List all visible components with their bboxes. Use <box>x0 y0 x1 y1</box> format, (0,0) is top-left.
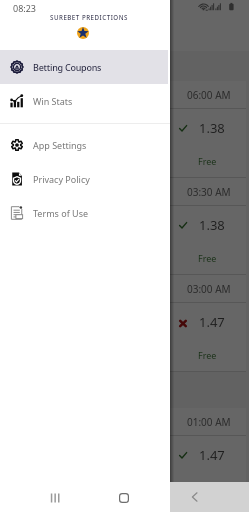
staticText: 1.47 <box>199 446 225 464</box>
staticText: App Settings <box>33 139 87 151</box>
staticText: Free <box>198 155 217 167</box>
staticText: 01:00 AM <box>187 415 231 429</box>
button[interactable]: 03:00 AM <box>3 275 246 372</box>
staticText: Betting Coupons <box>33 61 102 73</box>
button[interactable]: Betting Coupons <box>0 50 168 84</box>
staticText: 03:30 AM <box>187 185 231 199</box>
button[interactable]: App Settings <box>0 128 168 162</box>
button[interactable]: Back <box>183 482 207 512</box>
staticText: 1.38 <box>199 216 225 234</box>
button[interactable]: 06:00 AM <box>3 81 246 178</box>
staticText: Free <box>198 349 217 361</box>
button[interactable]: 01:00 AM <box>3 408 246 505</box>
button[interactable]: Win Stats <box>0 84 168 118</box>
staticText: 06:00 AM <box>187 88 231 102</box>
staticText: Terms of Use <box>33 207 89 219</box>
staticText: Win Stats <box>33 95 73 107</box>
staticText: 08:23 <box>13 2 37 14</box>
staticText: 03:00 AM <box>187 282 231 296</box>
button[interactable]: Privacy Policy <box>0 162 168 196</box>
staticText: 1.47 <box>199 313 225 331</box>
staticText: SUREBET PREDICTIONS <box>50 13 128 21</box>
button[interactable]: 03:30 AM <box>3 178 246 275</box>
button[interactable]: Home <box>112 483 136 512</box>
staticText: Free <box>198 252 217 264</box>
button[interactable]: Terms of Use <box>0 196 168 230</box>
staticText: 1.38 <box>199 119 225 137</box>
button[interactable]: Recent apps <box>43 483 67 512</box>
staticText: Privacy Policy <box>33 173 90 185</box>
